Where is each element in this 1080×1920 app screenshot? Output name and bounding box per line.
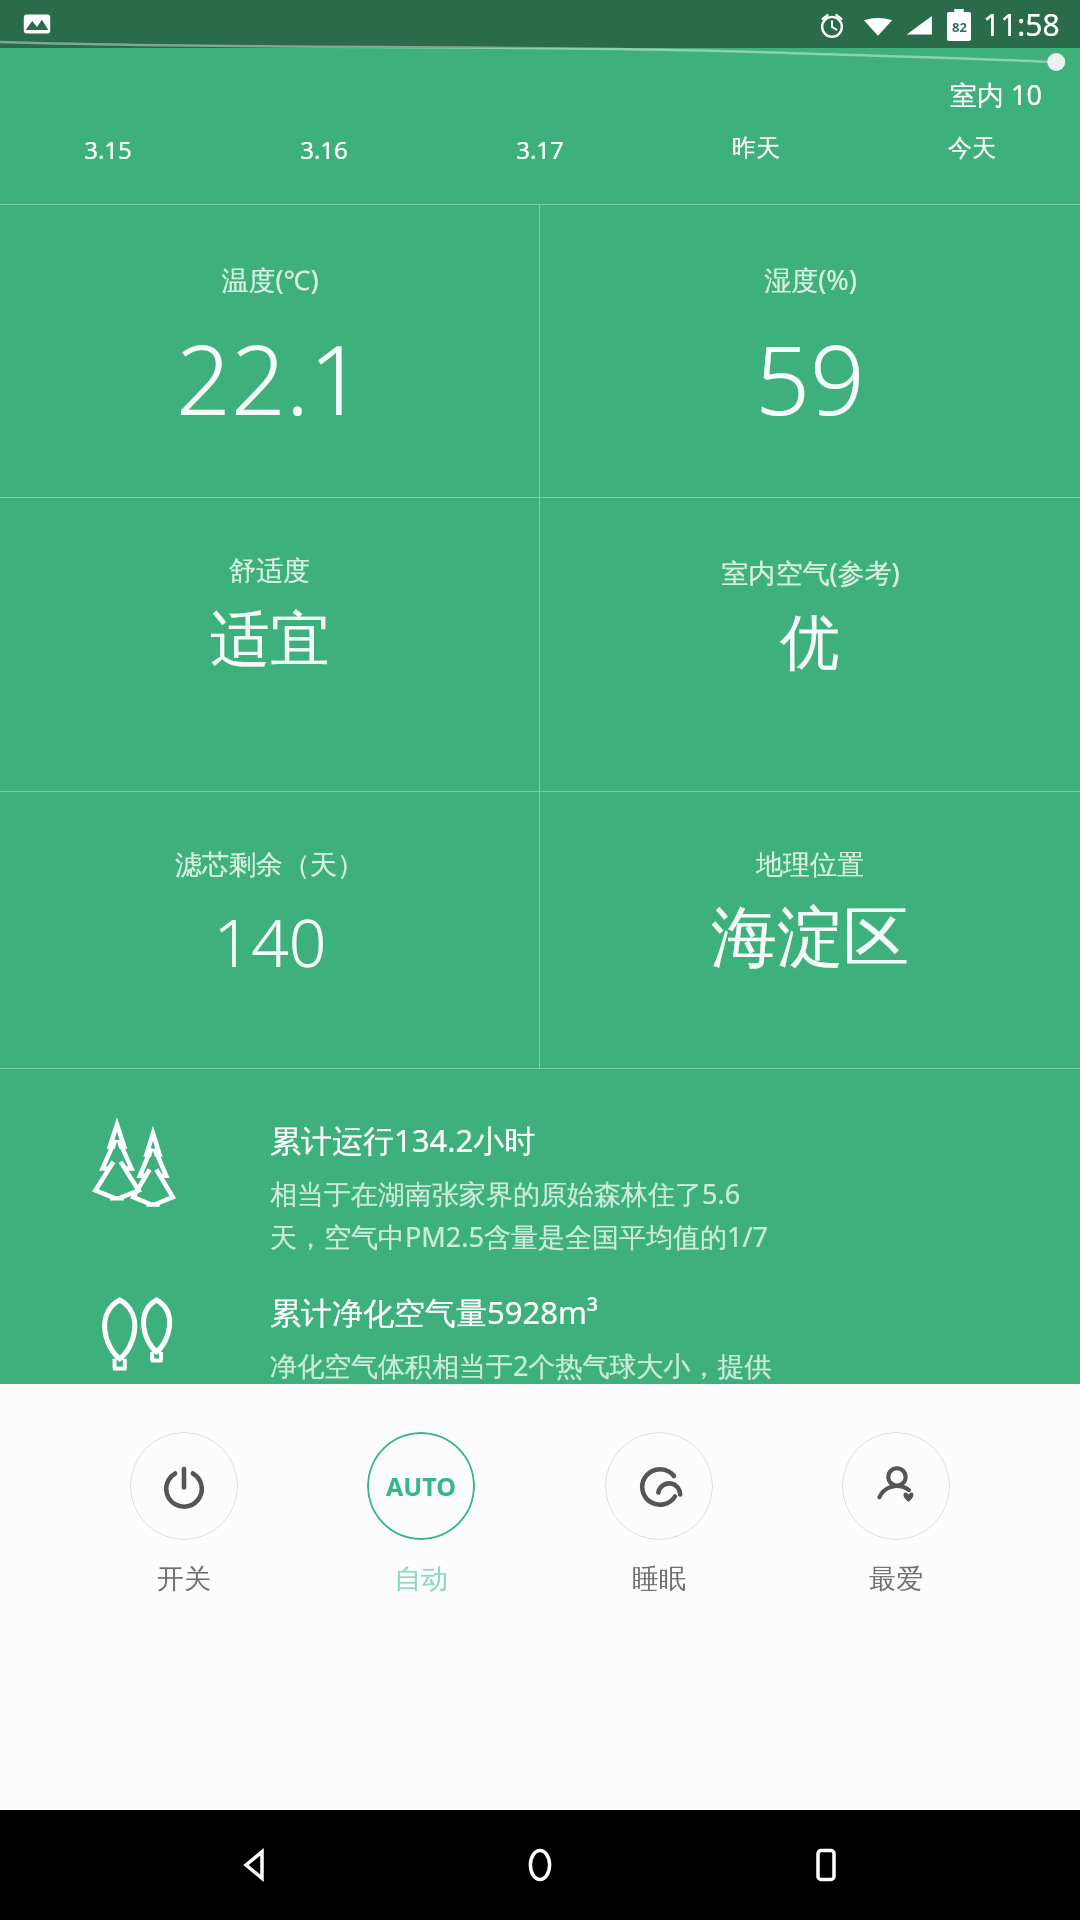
button[interactable]: Forest	[0, 1119, 1080, 1255]
staticText: 59	[755, 312, 865, 443]
staticText: 22.1	[176, 312, 364, 443]
button[interactable]: 自动	[367, 1432, 475, 1596]
staticText: 相当于在湖南张家界的原始森林住了5.6	[270, 1175, 741, 1212]
staticText: 滤芯剩余（天）	[175, 848, 364, 882]
button[interactable]: 最爱	[842, 1432, 950, 1596]
staticText: 累计运行134.2小时	[270, 1119, 536, 1161]
button[interactable]: 地理位置	[540, 792, 1080, 1068]
staticText: 室内空气(参考)	[721, 554, 900, 591]
button[interactable]: 室内空气(参考)	[540, 498, 1080, 791]
staticText: 11:58	[983, 4, 1060, 45]
staticText: 适宜	[210, 602, 330, 678]
button[interactable]: 3.15	[0, 133, 216, 166]
staticText: 累计净化空气量5928m³	[270, 1291, 598, 1333]
button[interactable]: 滤芯剩余（天）	[0, 792, 539, 1068]
button[interactable]: 3.17	[432, 133, 648, 166]
staticText: 3.17	[516, 133, 564, 166]
button[interactable]: Home	[508, 1833, 572, 1897]
button[interactable]: Air volume	[0, 1291, 1080, 1384]
button[interactable]: 湿度(%)	[540, 205, 1080, 497]
button[interactable]: Recent apps	[794, 1833, 858, 1897]
staticText: 最爱	[869, 1562, 923, 1596]
button[interactable]: Back	[222, 1833, 286, 1897]
staticText: 昨天	[732, 133, 780, 163]
staticText: 3.15	[84, 133, 132, 166]
staticText: 海淀区	[711, 896, 909, 979]
button[interactable]: 温度(℃)	[0, 205, 539, 497]
staticText: 82	[952, 18, 967, 36]
staticText: 室内 10	[950, 76, 1042, 113]
staticText: 今天	[948, 133, 996, 163]
staticText: 地理位置	[756, 848, 864, 882]
staticText: 舒适度	[229, 554, 310, 588]
staticText: 天，空气中PM2.5含量是全国平均值的1/7	[270, 1218, 768, 1255]
staticText: 净化空气体积相当于2个热气球大小，提供	[270, 1347, 772, 1384]
staticText: 140	[213, 896, 327, 986]
staticText: 自动	[394, 1562, 448, 1596]
staticText: 优	[780, 605, 840, 681]
button[interactable]: 今天	[864, 133, 1080, 163]
staticText: 睡眠	[632, 1562, 686, 1596]
button[interactable]: 3.16	[216, 133, 432, 166]
other: Forest	[90, 1119, 180, 1209]
button[interactable]: 昨天	[648, 133, 864, 163]
button[interactable]: 舒适度	[0, 498, 539, 791]
staticText: 温度(℃)	[221, 261, 319, 298]
other: Air volume	[90, 1291, 180, 1381]
button[interactable]: 开关	[130, 1432, 238, 1596]
staticText: 3.16	[300, 133, 348, 166]
staticText: AUTO	[386, 1469, 456, 1503]
staticText: 湿度(%)	[764, 261, 857, 298]
staticText: 开关	[157, 1562, 211, 1596]
button[interactable]: 睡眠	[605, 1432, 713, 1596]
